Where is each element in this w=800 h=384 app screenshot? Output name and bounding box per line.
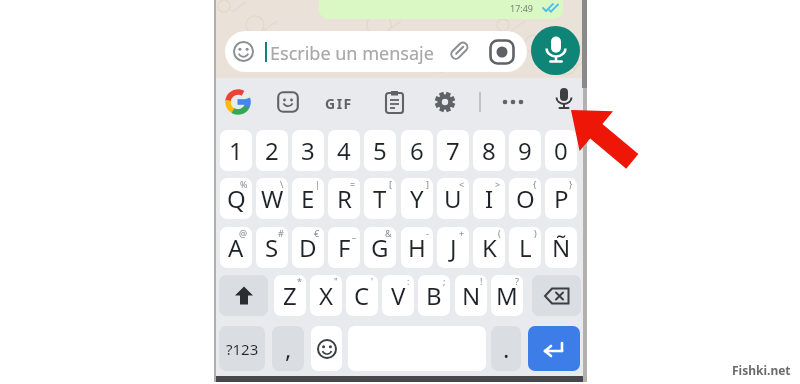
- staticText: ': [371, 275, 374, 287]
- button[interactable]: 5: [364, 130, 396, 171]
- button[interactable]: F: [328, 227, 360, 268]
- staticText: €: [314, 227, 320, 239]
- button[interactable]: H: [401, 227, 433, 268]
- button[interactable]: ?123: [219, 326, 265, 371]
- staticText: 6: [410, 134, 424, 167]
- button[interactable]: 8: [473, 130, 505, 171]
- button[interactable]: W: [256, 178, 288, 219]
- button[interactable]: [384, 90, 405, 114]
- staticText: }: [569, 178, 573, 190]
- button[interactable]: 0: [545, 130, 577, 171]
- button[interactable]: 3: [292, 130, 324, 171]
- staticText: G: [371, 231, 389, 264]
- staticText: E: [301, 182, 315, 215]
- staticText: &: [385, 227, 392, 239]
- staticText: .: [503, 332, 510, 365]
- button[interactable]: Escribe un mensaje: [225, 31, 527, 72]
- staticText: ?123: [226, 339, 259, 359]
- staticText: J: [450, 231, 457, 264]
- staticText: Fishki.net: [732, 362, 791, 378]
- staticText: #: [278, 227, 284, 239]
- button[interactable]: J: [437, 227, 469, 268]
- staticText: Ñ: [552, 231, 571, 264]
- staticText: L: [519, 231, 532, 264]
- button[interactable]: [311, 326, 342, 371]
- button[interactable]: Q: [220, 178, 252, 219]
- staticText: Z: [283, 279, 297, 312]
- staticText: -: [426, 227, 429, 239]
- button[interactable]: 6: [401, 130, 433, 171]
- staticText: O: [516, 182, 535, 215]
- button[interactable]: .: [491, 326, 521, 371]
- staticText: ): [534, 227, 537, 239]
- button[interactable]: X: [310, 275, 342, 316]
- button[interactable]: D: [292, 227, 324, 268]
- staticText: H: [408, 231, 426, 264]
- staticText: :: [407, 275, 410, 287]
- button[interactable]: [553, 88, 575, 115]
- staticText: >: [495, 178, 501, 190]
- button[interactable]: [528, 326, 580, 371]
- staticText: ]: [426, 178, 429, 190]
- button[interactable]: G: [364, 227, 396, 268]
- button[interactable]: K: [473, 227, 505, 268]
- button[interactable]: A: [220, 227, 252, 268]
- button[interactable]: L: [509, 227, 541, 268]
- staticText: _: [352, 227, 356, 239]
- staticText: *: [297, 275, 302, 287]
- staticText: ": [334, 275, 338, 287]
- staticText: %: [240, 178, 248, 190]
- button[interactable]: Ñ: [545, 227, 577, 268]
- button[interactable]: M: [491, 275, 523, 316]
- staticText: A: [228, 231, 244, 264]
- staticText: Escribe un mensaje: [270, 41, 434, 66]
- button[interactable]: [532, 275, 581, 316]
- staticText: 8: [482, 134, 496, 167]
- button[interactable]: [219, 275, 268, 316]
- staticText: F: [338, 231, 351, 264]
- button[interactable]: Z: [274, 275, 306, 316]
- button[interactable]: [225, 89, 251, 115]
- staticText: X: [319, 279, 334, 312]
- staticText: T: [373, 182, 387, 215]
- button[interactable]: 4: [328, 130, 360, 171]
- staticText: W: [261, 182, 284, 215]
- staticText: D: [299, 231, 317, 264]
- button[interactable]: P: [545, 178, 577, 219]
- staticText: [: [389, 178, 392, 190]
- staticText: 7: [446, 134, 460, 167]
- button[interactable]: S: [256, 227, 288, 268]
- button[interactable]: GIF: [325, 94, 353, 113]
- staticText: R: [337, 182, 352, 215]
- button[interactable]: 7: [437, 130, 469, 171]
- staticText: 17:49: [510, 2, 534, 14]
- button[interactable]: I: [473, 178, 505, 219]
- staticText: ?: [515, 275, 519, 287]
- button[interactable]: ,: [272, 326, 304, 371]
- button[interactable]: T: [364, 178, 396, 219]
- button[interactable]: O: [509, 178, 541, 219]
- button[interactable]: V: [382, 275, 414, 316]
- button[interactable]: R: [328, 178, 360, 219]
- staticText: 5: [373, 134, 387, 167]
- button[interactable]: [501, 97, 525, 107]
- staticText: +: [459, 227, 465, 239]
- staticText: 1: [229, 134, 243, 167]
- button[interactable]: 1: [220, 130, 252, 171]
- button[interactable]: C: [346, 275, 378, 316]
- staticText: |: [315, 178, 320, 190]
- button[interactable]: 2: [256, 130, 288, 171]
- button[interactable]: [277, 91, 299, 113]
- staticText: N: [462, 279, 481, 312]
- button[interactable]: [434, 91, 456, 113]
- button[interactable]: [531, 26, 580, 75]
- button[interactable]: 9: [509, 130, 541, 171]
- button[interactable]: N: [455, 275, 487, 316]
- button[interactable]: B: [418, 275, 450, 316]
- button[interactable]: Y: [401, 178, 433, 219]
- staticText: ;: [443, 275, 446, 287]
- button[interactable]: E: [292, 178, 324, 219]
- button[interactable]: U: [437, 178, 469, 219]
- staticText: Y: [410, 182, 424, 215]
